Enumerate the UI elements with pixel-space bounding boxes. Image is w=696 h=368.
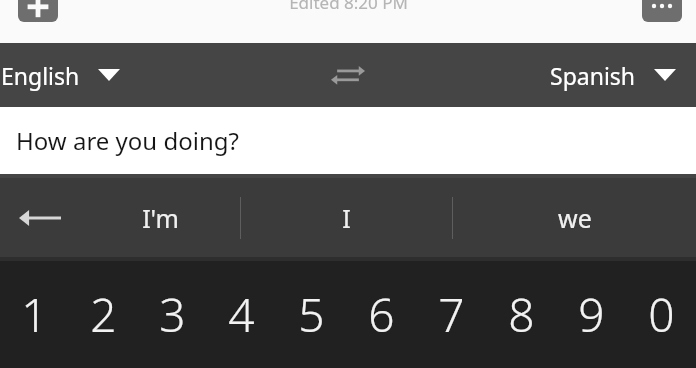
staticText: English <box>1 60 80 91</box>
button[interactable]: 1 <box>0 261 69 368</box>
staticText: 1 <box>21 283 48 346</box>
button[interactable]: 6 <box>346 261 416 368</box>
staticText: I <box>342 201 351 235</box>
staticText: Edited 8:20 PM <box>289 0 408 14</box>
staticText: I'm <box>142 201 179 235</box>
button[interactable]: 0 <box>626 261 696 368</box>
button[interactable]: English <box>0 43 318 107</box>
button[interactable]: More options <box>642 0 682 22</box>
button[interactable]: 3 <box>138 261 207 368</box>
button[interactable]: 5 <box>276 261 346 368</box>
button[interactable]: I'm <box>80 178 240 257</box>
staticText: 0 <box>648 283 675 346</box>
button[interactable]: Back <box>0 178 80 257</box>
staticText: 3 <box>159 283 186 346</box>
staticText: 7 <box>438 283 465 346</box>
button[interactable]: Swap languages <box>318 45 378 105</box>
staticText: 4 <box>228 283 255 346</box>
staticText: Spanish <box>550 60 636 91</box>
staticText: How are you doing? <box>16 124 239 157</box>
button[interactable]: 7 <box>416 261 486 368</box>
staticText: 5 <box>298 283 325 346</box>
button[interactable]: How are you doing? <box>0 107 696 174</box>
staticText: 2 <box>90 283 117 346</box>
button[interactable]: 4 <box>207 261 276 368</box>
button[interactable]: I <box>241 178 452 257</box>
button[interactable]: 8 <box>486 261 556 368</box>
button[interactable]: 2 <box>69 261 138 368</box>
staticText: we <box>558 201 592 235</box>
staticText: 6 <box>368 283 395 346</box>
button[interactable]: Spanish <box>378 43 696 107</box>
staticText: 9 <box>578 283 605 346</box>
staticText: 8 <box>508 283 535 346</box>
button[interactable]: we <box>453 178 696 257</box>
button[interactable]: 9 <box>556 261 626 368</box>
button[interactable]: Add <box>18 0 58 22</box>
